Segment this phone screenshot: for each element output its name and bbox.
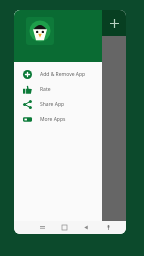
button[interactable]: Share App [14,97,102,112]
button[interactable]: Recent apps [31,221,53,234]
button[interactable]: Home [53,221,75,234]
button[interactable]: Add [102,10,126,36]
staticText: Add & Remove App [40,71,86,78]
staticText: Rate [40,86,51,93]
button[interactable]: Back [75,221,97,234]
button[interactable]: More Apps [14,112,102,127]
button[interactable]: Rate [14,82,102,97]
button[interactable]: Assistant [97,221,119,234]
staticText: Share App [40,101,65,108]
button[interactable]: Add & Remove App [14,67,102,82]
staticText: More Apps [40,116,66,123]
button[interactable]: App logo [26,17,54,45]
